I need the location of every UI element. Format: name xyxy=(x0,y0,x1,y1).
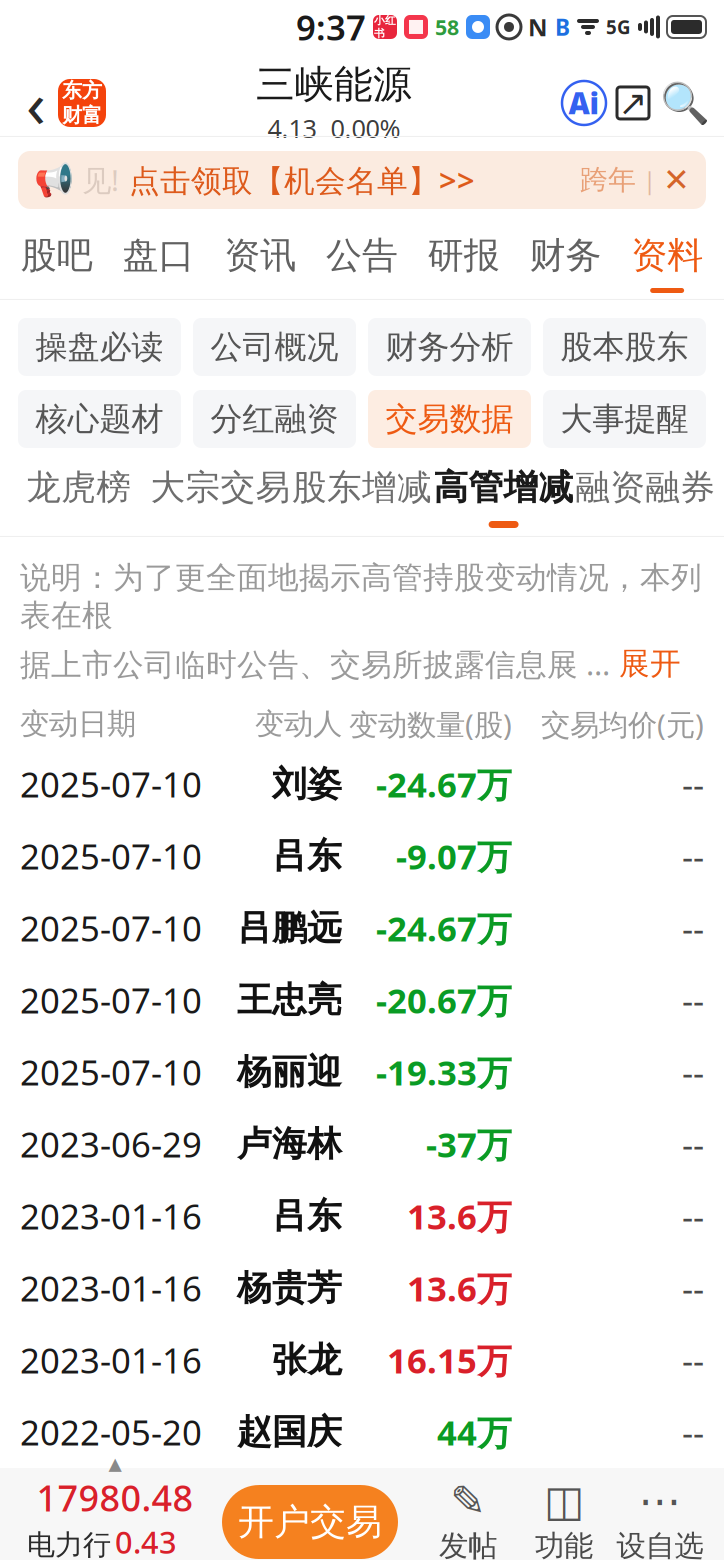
button[interactable]: 公司概况 xyxy=(193,318,356,376)
staticText: -20.67万 xyxy=(376,977,512,1023)
staticText: 58 xyxy=(435,13,459,41)
staticText: 大宗交易 xyxy=(150,466,290,509)
staticText: 0.43% xyxy=(115,1521,177,1560)
staticText: 大事提醒 xyxy=(560,399,688,439)
button[interactable]: 2025-07-10 xyxy=(0,748,724,820)
staticText: 44万 xyxy=(437,1409,512,1455)
staticText: 4.13 xyxy=(267,111,316,145)
button[interactable]: 操盘必读 xyxy=(18,318,181,376)
staticText: -- xyxy=(682,1121,704,1167)
button[interactable]: 2023-01-16 xyxy=(0,1180,724,1252)
button[interactable]: 财务 xyxy=(515,223,616,299)
staticText: 17980.48 xyxy=(36,1474,193,1521)
button[interactable]: 📢 xyxy=(0,137,724,223)
staticText: 2023-01-16 xyxy=(20,1265,202,1311)
staticText: 9:37 xyxy=(296,4,366,50)
staticText: 杨贵芳 xyxy=(237,1267,342,1309)
staticText: 说明：为了更全面地揭示高管持股变动情况，本列表在根 xyxy=(20,559,702,634)
staticText: 2023-01-16 xyxy=(20,1337,202,1383)
button[interactable]: 2023-01-16 xyxy=(0,1252,724,1324)
staticText: N xyxy=(528,11,548,43)
button[interactable]: 股东增减 xyxy=(291,454,433,536)
staticText: 盘口 xyxy=(123,233,195,278)
button[interactable]: 资讯 xyxy=(209,223,311,299)
button[interactable]: 股本股东 xyxy=(543,318,706,376)
button[interactable]: Share xyxy=(606,76,660,130)
staticText: ✕ xyxy=(663,162,690,198)
button[interactable]: 2023-01-16 xyxy=(0,1324,724,1396)
button[interactable]: ▲ xyxy=(16,1454,214,1560)
staticText: 2023-06-29 xyxy=(20,1121,202,1167)
button[interactable]: 交易数据 xyxy=(368,390,531,448)
button[interactable]: 2025-07-10 xyxy=(0,892,724,964)
button[interactable]: 大事提醒 xyxy=(543,390,706,448)
staticText: | xyxy=(643,164,656,196)
staticText: 刘姿 xyxy=(272,763,342,805)
button[interactable]: 核心题材 xyxy=(18,390,181,448)
button[interactable]: 盘口 xyxy=(108,223,209,299)
button[interactable]: 展开 xyxy=(610,645,681,682)
staticText: ↗ xyxy=(618,83,647,123)
button[interactable]: 融资融券 xyxy=(574,454,716,536)
staticText: 小红书 xyxy=(374,14,396,40)
staticText: 2025-07-10 xyxy=(20,905,202,951)
staticText: ‹ xyxy=(26,60,46,145)
staticText: -- xyxy=(682,833,704,879)
button[interactable]: 分红融资 xyxy=(193,390,356,448)
staticText: 2025-07-10 xyxy=(20,977,202,1023)
button[interactable]: 股吧 xyxy=(6,223,108,299)
button[interactable]: 财务分析 xyxy=(368,318,531,376)
staticText: -- xyxy=(682,1337,704,1383)
button[interactable]: AI assistant xyxy=(562,81,606,125)
staticText: 功能 xyxy=(535,1528,593,1560)
staticText: 操盘必读 xyxy=(35,327,163,367)
button[interactable]: 2025-07-10 xyxy=(0,964,724,1036)
button[interactable]: 2023-06-29 xyxy=(0,1108,724,1180)
button[interactable]: ⋯ xyxy=(612,1480,708,1560)
button[interactable]: 2025-07-10 xyxy=(0,820,724,892)
button[interactable]: 东方财富 xyxy=(58,79,106,127)
staticText: -37万 xyxy=(426,1121,512,1167)
button[interactable]: Back xyxy=(14,72,58,134)
staticText: 赵国庆 xyxy=(237,1411,342,1453)
staticText: 公告 xyxy=(326,233,398,278)
staticText: 股本股东 xyxy=(560,327,688,367)
staticText: 变动人 xyxy=(255,706,342,742)
button[interactable]: 大宗交易 xyxy=(150,454,291,536)
button[interactable]: 研报 xyxy=(413,223,515,299)
staticText: 王忠亮 xyxy=(237,979,342,1021)
staticText: 点击领取【机会名单】>> xyxy=(129,160,475,200)
button[interactable]: Search xyxy=(660,78,710,128)
staticText: 📢 xyxy=(34,162,74,198)
staticText: -- xyxy=(682,1265,704,1311)
staticText: ✎ xyxy=(450,1477,486,1525)
button[interactable]: 龙虎榜 xyxy=(8,454,150,536)
staticText: -19.33万 xyxy=(376,1049,512,1095)
staticText: 研报 xyxy=(428,233,500,278)
button[interactable]: 2022-05-20 xyxy=(0,1396,724,1468)
staticText: -- xyxy=(682,1409,704,1455)
button[interactable]: 资料 xyxy=(616,223,718,299)
staticText: 分红融资 xyxy=(210,399,338,439)
staticText: 股东增减 xyxy=(292,466,432,509)
staticText: 13.6万 xyxy=(407,1193,512,1239)
button[interactable]: ◫ xyxy=(516,1480,612,1560)
staticText: 2025-07-10 xyxy=(20,761,202,807)
staticText: 财富 xyxy=(62,103,102,128)
staticText: 高管增减 xyxy=(434,466,574,509)
staticText: 5G xyxy=(606,15,631,39)
staticText: -24.67万 xyxy=(376,761,512,807)
staticText: Ai xyxy=(568,83,599,122)
staticText: -- xyxy=(682,1193,704,1239)
staticText: 2023-01-16 xyxy=(20,1193,202,1239)
button[interactable]: 高管增减 xyxy=(433,454,574,536)
button[interactable]: 2025-07-10 xyxy=(0,1036,724,1108)
staticText: 变动日期 xyxy=(20,706,136,742)
button[interactable]: ✎ xyxy=(420,1480,516,1560)
button[interactable]: 公告 xyxy=(311,223,413,299)
staticText: 开户交易 xyxy=(238,1500,382,1544)
staticText: -24.67万 xyxy=(376,905,512,951)
staticText: -- xyxy=(682,761,704,807)
staticText: ▲ xyxy=(108,1454,121,1474)
button[interactable]: 开户交易 xyxy=(222,1485,398,1559)
